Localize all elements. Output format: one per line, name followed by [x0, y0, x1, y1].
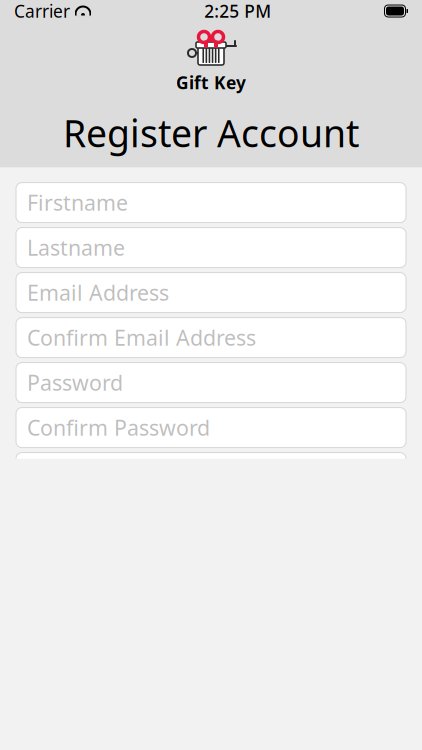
- staticText: Email Address: [27, 278, 169, 307]
- button[interactable]: Email Address: [16, 273, 406, 313]
- staticText: 2:25 PM: [204, 0, 271, 22]
- button[interactable]: Postal Code: [16, 453, 406, 493]
- staticText: Password: [27, 368, 123, 397]
- button[interactable]: Confirm Password: [16, 408, 406, 448]
- staticText: Carrier: [14, 0, 70, 22]
- staticText: Register Account: [63, 108, 359, 158]
- staticText: Gift Key: [176, 71, 246, 94]
- staticText: Firstname: [27, 188, 128, 217]
- staticText: Confirm Email Address: [27, 323, 256, 352]
- button[interactable]: Confirm Email Address: [16, 318, 406, 358]
- button[interactable]: Lastname: [16, 228, 406, 268]
- button[interactable]: Password: [16, 363, 406, 403]
- button[interactable]: Firstname: [16, 183, 406, 223]
- staticText: Lastname: [27, 233, 125, 262]
- staticText: Confirm Password: [27, 413, 210, 442]
